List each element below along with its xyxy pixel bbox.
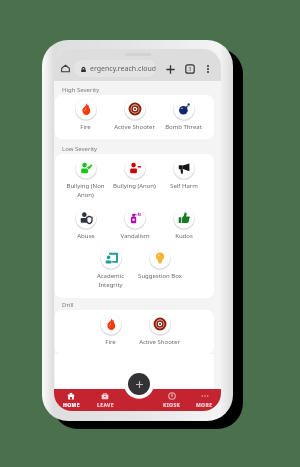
button[interactable]: Home: [54, 389, 88, 411]
staticText: Bullying (Anon): [113, 182, 156, 190]
staticText: Vandalism: [120, 232, 150, 240]
staticText: 3: [188, 65, 192, 73]
staticText: Active Shooter: [114, 123, 155, 131]
button[interactable]: ergency.reach.cloud: [74, 60, 156, 77]
button[interactable]: Leave: [88, 389, 122, 411]
staticText: MORE: [196, 402, 213, 409]
button[interactable]: Add report: [128, 373, 150, 395]
button[interactable]: Fire: [86, 312, 135, 352]
staticText: High Severity: [62, 86, 100, 94]
button[interactable]: Active Shooter: [135, 312, 184, 352]
staticText: Bullying (Non Anon): [61, 182, 110, 199]
staticText: HOME: [63, 402, 80, 409]
other: Home: [67, 392, 75, 400]
staticText: Kudos: [175, 232, 193, 240]
button[interactable]: More options: [201, 62, 215, 76]
staticText: ergency.reach.cloud: [90, 64, 156, 74]
button[interactable]: Academic Integrity: [86, 246, 135, 296]
button[interactable]: Abuse: [61, 206, 110, 246]
staticText: Drill: [62, 301, 74, 309]
button[interactable]: Suggestion Box: [135, 246, 184, 296]
button[interactable]: Active Shooter: [110, 97, 159, 137]
button[interactable]: Fire: [61, 97, 110, 137]
button[interactable]: Kiosk: [155, 389, 188, 411]
other: Leave: [101, 392, 109, 400]
button[interactable]: Bomb Threat: [159, 97, 208, 137]
staticText: Self Harm: [170, 182, 198, 190]
other: More: [201, 392, 209, 400]
button[interactable]: Bullying (Anon): [110, 156, 159, 206]
staticText: Academic Integrity: [86, 272, 135, 289]
staticText: LEAVE: [97, 402, 114, 409]
button[interactable]: New tab: [163, 62, 177, 76]
staticText: Low Severity: [62, 145, 98, 153]
staticText: Bomb Threat: [165, 123, 202, 131]
staticText: Active Shooter: [139, 338, 180, 346]
staticText: KIOSK: [163, 402, 181, 409]
button[interactable]: Tabs: [183, 62, 197, 76]
button[interactable]: More: [188, 389, 221, 411]
staticText: Fire: [105, 338, 116, 346]
staticText: Abuse: [77, 232, 95, 240]
staticText: Fire: [80, 123, 91, 131]
button[interactable]: Self Harm: [159, 156, 208, 206]
button[interactable]: Vandalism: [110, 206, 159, 246]
button[interactable]: Bullying (Non Anon): [61, 156, 110, 206]
staticText: Suggestion Box: [138, 272, 182, 280]
button[interactable]: Kudos: [159, 206, 208, 246]
button[interactable]: Home: [59, 62, 72, 75]
other: Kiosk: [168, 392, 176, 400]
